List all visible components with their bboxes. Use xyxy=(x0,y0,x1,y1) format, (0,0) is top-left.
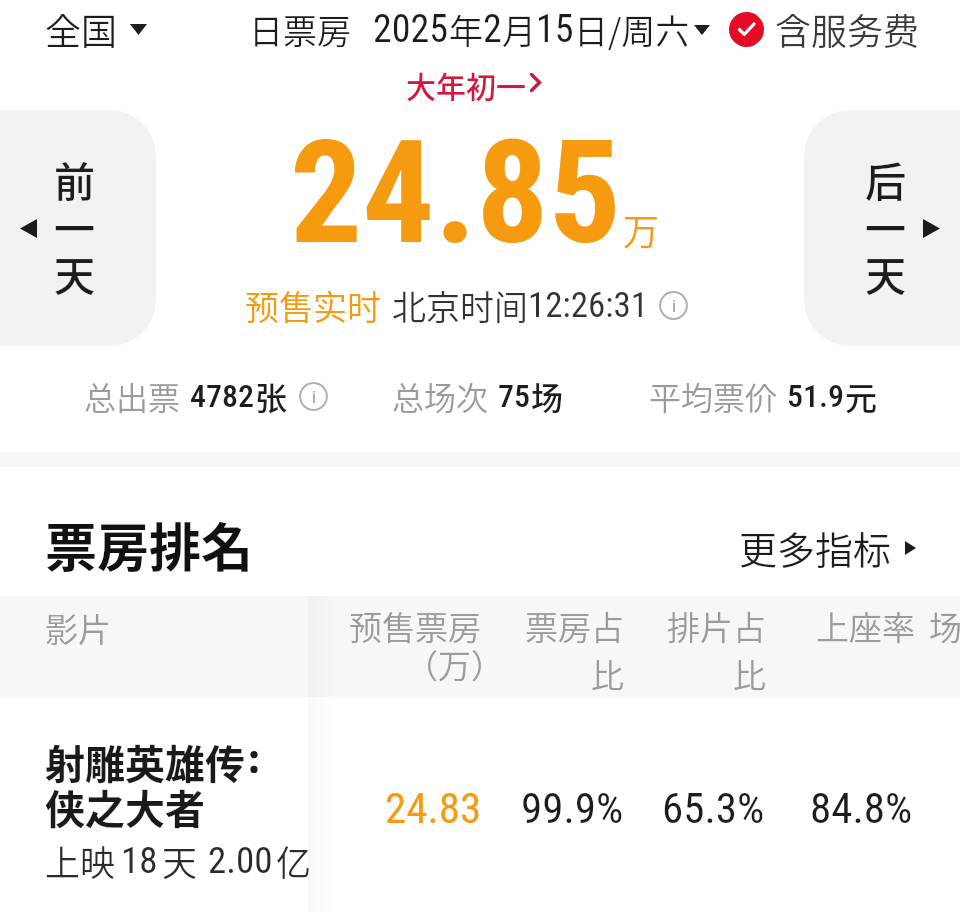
staticText: 99.9% xyxy=(521,783,624,833)
button[interactable]: 射雕英雄传 xyxy=(0,697,960,912)
staticText: 总出票 xyxy=(84,373,181,419)
staticText: 平均票价 xyxy=(649,373,778,419)
staticText: 24.85 xyxy=(290,109,622,277)
button[interactable]: 后一天 xyxy=(804,110,960,346)
button[interactable]: 2025 xyxy=(373,5,710,54)
staticText: 4782 xyxy=(190,377,255,415)
staticText: 84.8% xyxy=(810,783,913,833)
staticText: 前 一 天 xyxy=(54,149,95,302)
staticText: 总场次 xyxy=(392,373,489,419)
staticText: 北京时间 xyxy=(392,281,528,330)
staticText: 排片占 xyxy=(667,602,766,650)
staticText: 15 xyxy=(536,7,574,52)
staticText: 日/周六 xyxy=(574,5,690,54)
staticText: i xyxy=(312,387,316,407)
staticText: 18 xyxy=(121,839,158,882)
staticText: 票房排名 xyxy=(45,507,254,582)
staticText: 51.9 xyxy=(787,377,845,415)
staticText: 年 xyxy=(449,5,483,54)
staticText: 更多指标 xyxy=(739,520,892,575)
staticText: i xyxy=(672,296,676,316)
staticText: 比 xyxy=(591,650,624,698)
staticText: 预售票房 xyxy=(349,602,481,650)
staticText: （万） xyxy=(405,640,504,688)
button[interactable]: 日票房 xyxy=(249,5,351,54)
button[interactable]: 大年初一 xyxy=(406,63,541,101)
staticText: 射雕英雄传 xyxy=(45,733,245,791)
staticText: 含服务费 xyxy=(775,3,920,55)
staticText: 票房占 xyxy=(525,602,624,650)
staticText: 上映 xyxy=(45,835,116,886)
staticText: 张 xyxy=(255,373,288,419)
staticText: 影片 xyxy=(45,604,111,652)
staticText: 2025 xyxy=(373,7,449,52)
staticText: 侠之大者 xyxy=(45,778,205,836)
staticText: 上座率 xyxy=(816,602,915,650)
staticText: 全国 xyxy=(45,3,118,55)
button[interactable]: 全国 xyxy=(45,3,147,55)
staticText: 比 xyxy=(733,650,766,698)
staticText: 万 xyxy=(623,203,660,255)
button[interactable]: 更多指标 xyxy=(739,520,916,575)
staticText: 后 一 天 xyxy=(865,149,906,302)
staticText: 75 xyxy=(498,377,531,415)
button[interactable]: 含服务费 xyxy=(729,3,920,55)
staticText: 2 xyxy=(483,7,502,52)
staticText: 场 xyxy=(929,602,960,650)
button[interactable]: 前一天 xyxy=(0,110,156,346)
staticText: 场 xyxy=(531,373,564,419)
staticText: 大年初一 xyxy=(406,63,526,101)
staticText: 月 xyxy=(502,5,536,54)
staticText: 预售实时 xyxy=(245,281,381,330)
staticText: 亿 xyxy=(276,835,312,886)
staticText: 12:26:31 xyxy=(528,285,649,326)
staticText: 65.3% xyxy=(662,783,765,833)
staticText: 24.83 xyxy=(385,783,482,833)
staticText: 天 xyxy=(162,835,198,886)
staticText: 元 xyxy=(845,373,878,419)
staticText: 2.00 xyxy=(208,839,273,882)
